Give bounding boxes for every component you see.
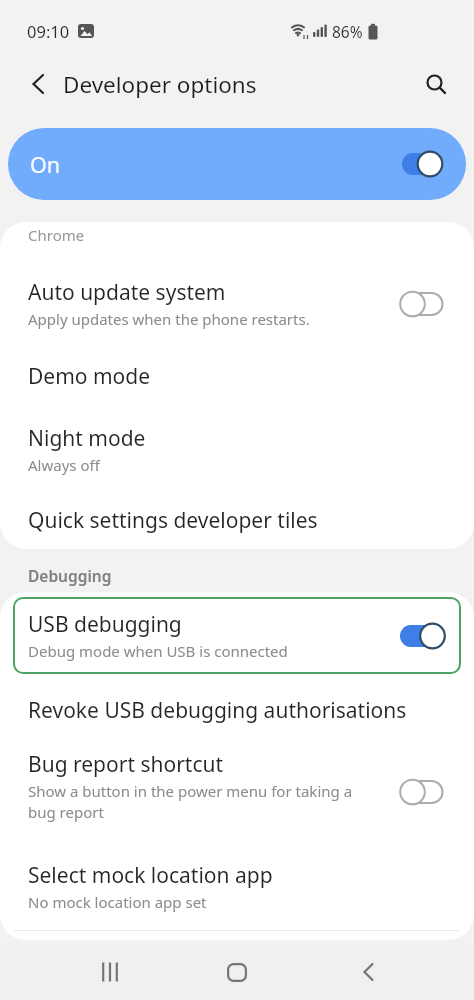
staticText: Auto update system xyxy=(28,278,226,307)
staticText: USB debugging xyxy=(28,610,182,639)
staticText: Apply updates when the phone restarts. xyxy=(28,309,310,329)
staticText: Chrome xyxy=(28,225,85,245)
button[interactable]: Revoke USB debugging authorisations xyxy=(0,679,474,741)
button[interactable] xyxy=(93,955,127,989)
staticText: 09:10 xyxy=(27,20,70,42)
staticText: Bug report shortcut xyxy=(28,750,224,779)
staticText: Developer options xyxy=(63,69,257,100)
staticText: Revoke USB debugging authorisations xyxy=(28,696,407,725)
staticText: Demo mode xyxy=(28,362,151,391)
staticText: Night mode xyxy=(28,424,146,453)
button[interactable]: Night mode xyxy=(0,407,474,491)
button[interactable] xyxy=(421,69,451,99)
button[interactable] xyxy=(351,955,385,989)
button[interactable]: Quick settings developer tiles xyxy=(0,491,474,549)
button[interactable] xyxy=(24,70,52,98)
staticText: On xyxy=(30,150,61,179)
button[interactable]: Select mock location app xyxy=(0,842,474,930)
button[interactable]: Auto update system xyxy=(0,262,474,345)
staticText: Quick settings developer tiles xyxy=(28,506,318,535)
staticText: No mock location app set xyxy=(28,892,207,912)
staticText: Always off xyxy=(28,455,100,475)
staticText: Select mock location app xyxy=(28,861,273,890)
button[interactable]: Demo mode xyxy=(0,345,474,407)
staticText: Debug mode when USB is connected xyxy=(28,641,288,661)
staticText: 86% xyxy=(332,21,363,42)
staticText: Debugging xyxy=(28,565,112,586)
button[interactable]: USB debugging xyxy=(13,597,461,674)
button[interactable] xyxy=(220,955,254,989)
button[interactable]: Bug report shortcut xyxy=(0,741,474,842)
button[interactable]: On xyxy=(8,128,466,200)
staticText: Show a button in the power menu for taki… xyxy=(28,781,353,823)
